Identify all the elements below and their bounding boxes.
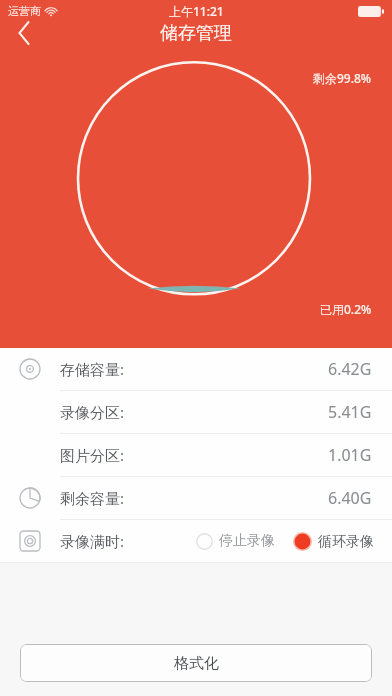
button[interactable]: 循环录像 (289, 528, 378, 555)
staticText: 6.42G (328, 358, 372, 380)
button[interactable]: 录像分区: (0, 391, 392, 434)
staticText: 6.40G (328, 487, 372, 509)
button[interactable]: 图片分区: (0, 434, 392, 477)
staticText: 存储容量: (60, 359, 125, 379)
staticText: 储存管理 (160, 22, 232, 44)
staticText: 格式化 (174, 654, 219, 673)
staticText: 剩余99.8% (313, 70, 372, 86)
button[interactable]: 存储容量: (0, 348, 392, 391)
staticText: 已用0.2% (320, 301, 372, 317)
staticText: 1.01G (328, 444, 372, 466)
staticText: 录像分区: (60, 402, 125, 422)
button[interactable]: 格式化 (20, 644, 372, 682)
button[interactable]: 剩余容量: (0, 477, 392, 520)
button[interactable]: 停止录像 (192, 528, 279, 554)
staticText: 录像满时: (60, 531, 125, 551)
staticText: 运营商 (8, 4, 41, 18)
staticText: 停止录像 (219, 532, 275, 550)
staticText: 5.41G (328, 401, 372, 423)
staticText: 上午11:21 (169, 3, 224, 19)
staticText: 剩余容量: (60, 488, 125, 508)
button[interactable]: 返回 (0, 22, 48, 44)
staticText: 循环录像 (318, 533, 374, 551)
staticText: 图片分区: (60, 445, 125, 465)
